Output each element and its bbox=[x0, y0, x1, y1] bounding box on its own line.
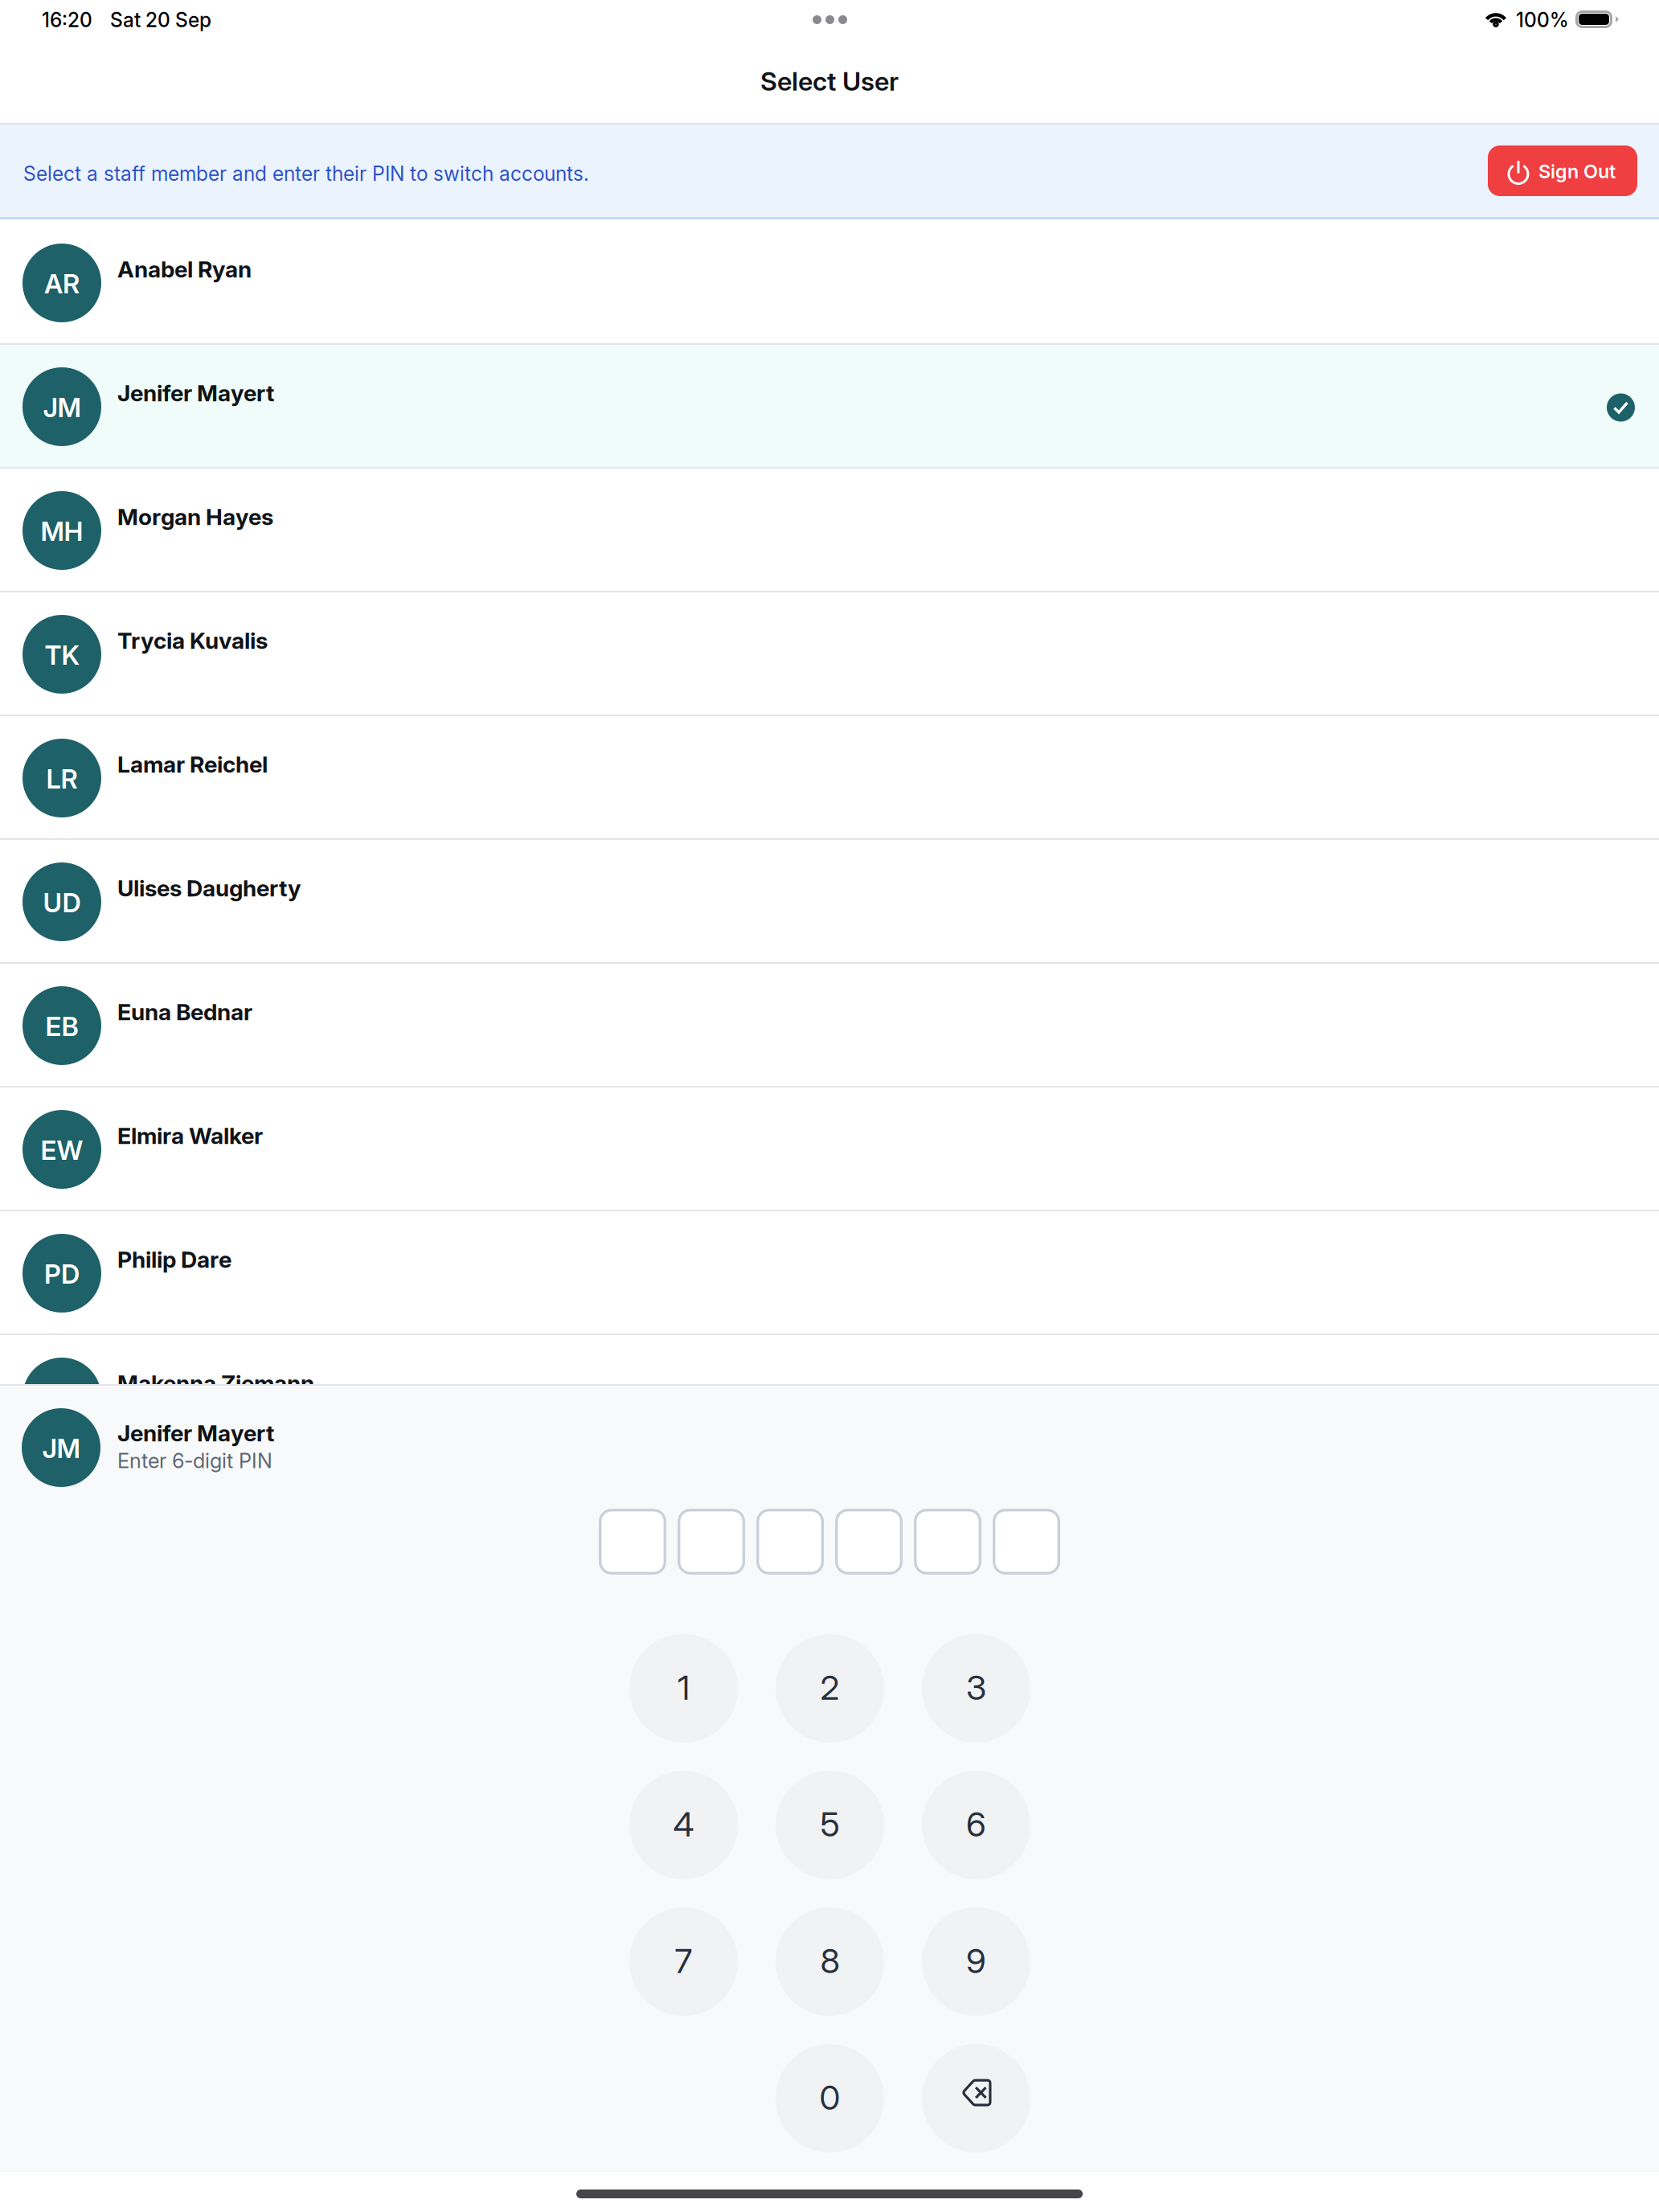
staticText: AR bbox=[44, 268, 80, 300]
staticText: Trycia Kuvalis bbox=[117, 627, 268, 654]
staticText: UD bbox=[43, 887, 81, 919]
staticText: Ulises Daugherty bbox=[117, 875, 301, 902]
button[interactable]: JM bbox=[0, 345, 1659, 467]
button[interactable]: MZ bbox=[0, 1335, 1659, 1457]
staticText: Morgan Hayes bbox=[117, 503, 273, 531]
button[interactable]: 9 bbox=[922, 1907, 1030, 2016]
staticText: Euna Bednar bbox=[117, 998, 252, 1026]
staticText: TK bbox=[45, 639, 79, 671]
staticText: 9 bbox=[966, 1940, 986, 1981]
button[interactable]: 2 bbox=[776, 1634, 884, 1743]
button[interactable]: 4 bbox=[629, 1771, 738, 1879]
staticText: 16:20 bbox=[42, 8, 92, 32]
staticText: MZ bbox=[42, 1382, 82, 1414]
staticText: EW bbox=[41, 1134, 83, 1166]
button[interactable]: MH bbox=[0, 469, 1659, 591]
staticText: Jenifer Mayert bbox=[117, 1419, 274, 1447]
staticText: JM bbox=[43, 392, 81, 424]
staticText: Elmira Walker bbox=[117, 1122, 263, 1149]
staticText: Lamar Reichel bbox=[117, 751, 268, 778]
button[interactable]: EW bbox=[0, 1088, 1659, 1210]
staticText: 3 bbox=[966, 1667, 986, 1708]
staticText: 100% bbox=[1516, 8, 1569, 32]
staticText: 4 bbox=[673, 1804, 694, 1845]
staticText: 5 bbox=[820, 1804, 840, 1845]
button[interactable]: LR bbox=[0, 716, 1659, 838]
staticText: 6 bbox=[966, 1804, 986, 1845]
button[interactable]: 1 bbox=[629, 1634, 738, 1743]
staticText: Sign Out bbox=[1538, 160, 1616, 183]
button[interactable]: EB bbox=[0, 964, 1659, 1086]
staticText: Makenna Ziemann bbox=[117, 1370, 314, 1397]
staticText: Sat 20 Sep bbox=[110, 8, 211, 32]
button[interactable]: 7 bbox=[629, 1907, 738, 2016]
staticText: 8 bbox=[820, 1940, 840, 1981]
button[interactable]: Sign Out bbox=[1488, 145, 1637, 196]
staticText: 1 bbox=[678, 1667, 690, 1708]
staticText: PD bbox=[44, 1258, 80, 1290]
button[interactable]: 5 bbox=[776, 1771, 884, 1879]
staticText: JM bbox=[42, 1432, 80, 1464]
button[interactable]: PD bbox=[0, 1211, 1659, 1333]
button[interactable]: Delete bbox=[922, 2044, 1030, 2153]
staticText: Jenifer Mayert bbox=[117, 379, 274, 407]
staticText: LR bbox=[46, 763, 78, 795]
staticText: Select a staff member and enter their PI… bbox=[23, 162, 589, 186]
staticText: Enter 6-digit PIN bbox=[117, 1448, 272, 1473]
staticText: 7 bbox=[675, 1940, 692, 1981]
button[interactable]: 8 bbox=[776, 1907, 884, 2016]
button[interactable]: TK bbox=[0, 592, 1659, 715]
button[interactable]: 0 bbox=[776, 2044, 884, 2153]
button[interactable]: 6 bbox=[922, 1771, 1030, 1879]
staticText: MH bbox=[41, 515, 83, 547]
staticText: EB bbox=[45, 1011, 78, 1042]
staticText: 0 bbox=[819, 2077, 840, 2118]
staticText: Anabel Ryan bbox=[117, 256, 252, 283]
staticText: Philip Dare bbox=[117, 1246, 231, 1273]
staticText: Select User bbox=[760, 66, 899, 97]
button[interactable]: 3 bbox=[922, 1634, 1030, 1743]
button[interactable]: AR bbox=[0, 221, 1659, 343]
button[interactable]: UD bbox=[0, 840, 1659, 962]
staticText: 2 bbox=[820, 1667, 840, 1708]
